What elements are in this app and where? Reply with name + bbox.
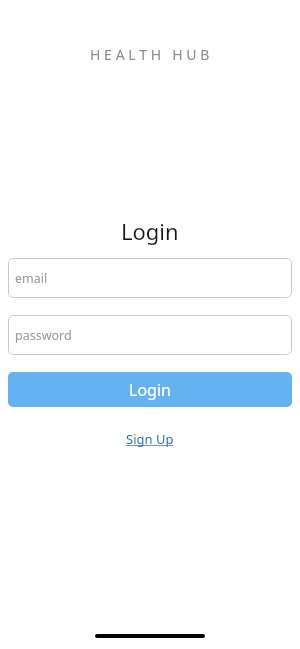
button[interactable]: password: [8, 315, 292, 355]
button[interactable]: Login: [8, 372, 292, 407]
button[interactable]: Sign Up: [126, 430, 174, 448]
staticText: HEALTH HUB: [90, 45, 214, 64]
button[interactable]: email: [8, 258, 292, 298]
staticText: email: [15, 270, 48, 287]
staticText: Login: [121, 216, 179, 246]
staticText: password: [15, 327, 72, 344]
staticText: Login: [129, 379, 171, 401]
